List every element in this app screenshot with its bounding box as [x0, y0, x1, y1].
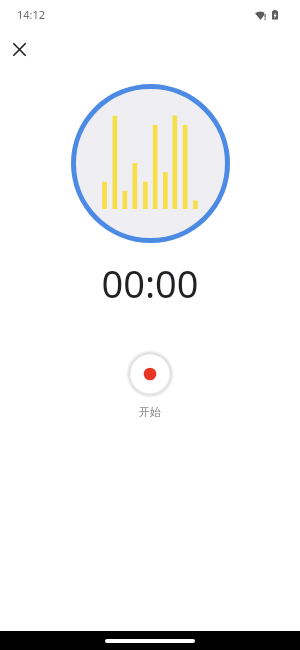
- button[interactable]: Close: [7, 37, 31, 61]
- staticText: 00:00: [0, 257, 300, 309]
- staticText: 开始: [139, 405, 161, 419]
- staticText: 14:12: [17, 7, 46, 22]
- button[interactable]: Start recording: [124, 348, 176, 400]
